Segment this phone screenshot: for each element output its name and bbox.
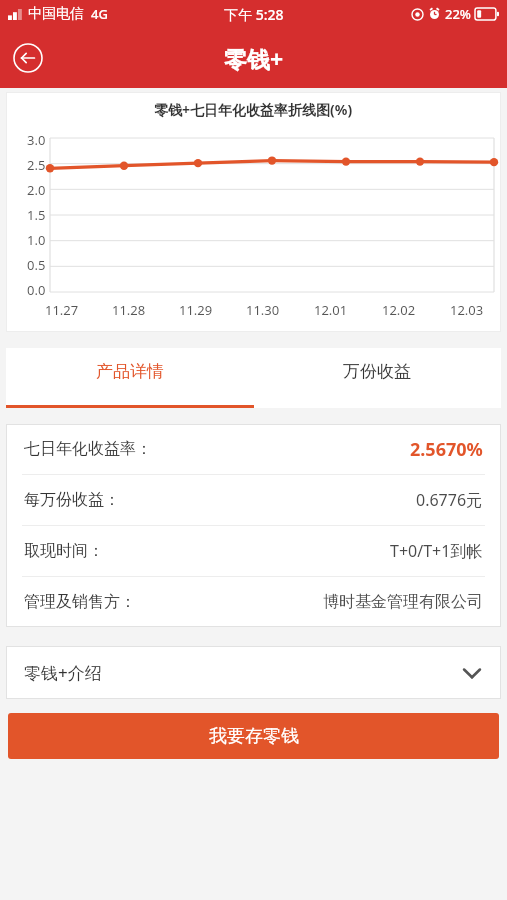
staticText: 零钱+七日年化收益率折线图(%) [154,100,353,119]
staticText: 中国电信 [28,5,84,23]
staticText: 4G [91,5,108,23]
staticText: 12.02 [382,301,416,319]
staticText: 11.30 [246,301,280,319]
button[interactable]: 每万份收益： [6,475,501,525]
button[interactable]: 七日年化收益率： [6,424,501,474]
staticText: 零钱+ [224,43,284,74]
staticText: 2.5670% [410,437,483,462]
staticText: 管理及销售方： [24,592,136,612]
staticText: 1.0 [27,231,46,249]
staticText: 22% [445,5,471,23]
staticText: 0.5 [27,256,46,274]
staticText: 11.29 [179,301,213,319]
button[interactable]: 产品详情 [6,348,253,408]
staticText: T+0/T+1到帐 [390,540,483,562]
staticText: 0.0 [27,281,46,299]
button[interactable]: Back [10,40,46,76]
staticText: 零钱+介绍 [24,661,102,684]
staticText: 11.28 [112,301,146,319]
staticText: 博时基金管理有限公司 [323,592,483,612]
staticText: 12.01 [314,301,348,319]
staticText: 每万份收益： [24,490,120,510]
staticText: 产品详情 [96,361,164,382]
button[interactable]: 管理及销售方： [6,577,501,627]
staticText: 万份收益 [343,361,411,382]
button[interactable]: 零钱+介绍 [6,646,501,699]
staticText: 3.0 [27,131,46,149]
button[interactable]: 万份收益 [253,348,501,408]
staticText: 2.5 [27,156,46,174]
button[interactable]: 我要存零钱 [8,713,499,759]
staticText: 取现时间： [24,541,104,561]
staticText: 我要存零钱 [209,725,299,748]
staticText: 2.0 [27,181,46,199]
staticText: 11.27 [45,301,79,319]
button[interactable]: 取现时间： [6,526,501,576]
staticText: 0.6776元 [416,489,483,511]
staticText: 七日年化收益率： [24,439,152,459]
staticText: 下午 5:28 [224,5,284,24]
staticText: 1.5 [27,206,46,224]
other: Expand [461,662,483,684]
staticText: 12.03 [450,301,484,319]
